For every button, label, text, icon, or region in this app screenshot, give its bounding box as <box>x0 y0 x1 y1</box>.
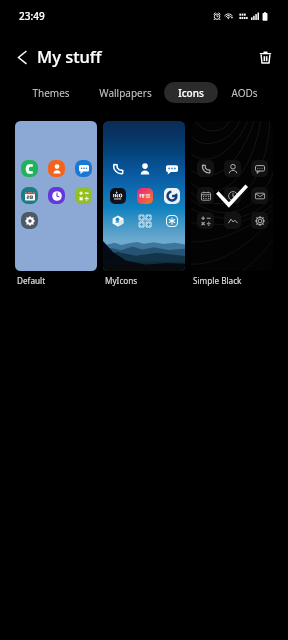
button[interactable]: Icons <box>164 82 218 103</box>
staticText: Icons <box>178 86 204 100</box>
button[interactable]: AODs <box>218 82 270 103</box>
staticText: Simple Black <box>193 275 242 286</box>
staticText: AODs <box>231 86 258 100</box>
button[interactable]: Delete <box>247 39 283 75</box>
staticText: MyIcons <box>105 275 138 286</box>
staticText: Wallpapers <box>99 86 152 100</box>
staticText: 23:49 <box>19 9 45 23</box>
button[interactable]: Default <box>15 121 97 282</box>
staticText: Themes <box>32 86 70 100</box>
button[interactable]: MyIcons <box>103 121 185 282</box>
button[interactable]: Simple Black <box>191 121 273 282</box>
button[interactable]: Wallpapers <box>90 82 160 103</box>
staticText: Default <box>17 275 46 286</box>
button[interactable]: Themes <box>23 82 79 103</box>
staticText: My stuff <box>37 45 102 67</box>
button[interactable]: Navigate up <box>4 39 40 75</box>
